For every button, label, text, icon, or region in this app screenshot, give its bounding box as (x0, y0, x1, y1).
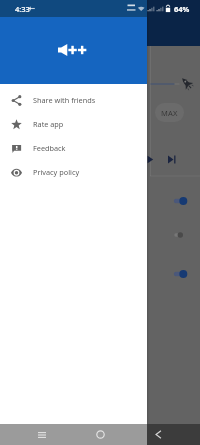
staticText: Privacy policy (33, 167, 80, 177)
button[interactable]: Toggle off (174, 230, 190, 240)
staticText: Feedback (33, 143, 66, 153)
staticText: 64% (174, 4, 190, 14)
staticText: MAX (161, 108, 178, 118)
button[interactable]: Toggle on (174, 196, 190, 206)
button[interactable]: Share with friends (0, 88, 147, 112)
button[interactable]: Rate app (0, 112, 147, 136)
button[interactable]: Toggle on (174, 269, 190, 279)
button[interactable]: Privacy policy (0, 160, 147, 184)
staticText: Rate app (33, 119, 64, 129)
button[interactable]: Feedback (0, 136, 147, 160)
staticText: 4:33 (15, 4, 30, 14)
button[interactable]: MAX (155, 103, 184, 122)
staticText: Share with friends (33, 95, 96, 105)
button[interactable]: Back (148, 424, 168, 445)
button[interactable]: Home (90, 424, 110, 445)
button[interactable]: Recent apps (32, 424, 52, 445)
